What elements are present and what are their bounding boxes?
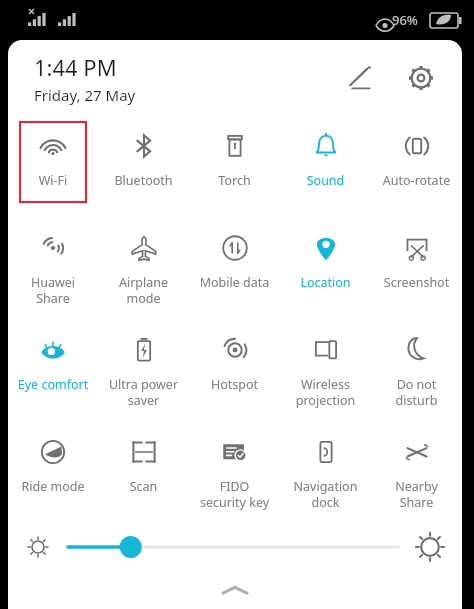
button[interactable]: Screenshot <box>371 218 462 320</box>
staticText: Airplane mode <box>99 274 188 306</box>
staticText: Navigation dock <box>281 478 370 510</box>
button[interactable]: Bluetooth <box>98 116 189 218</box>
button[interactable]: Brightness slider <box>68 524 398 570</box>
staticText: Screenshot <box>372 274 461 291</box>
button[interactable]: Ride mode <box>8 422 98 524</box>
button[interactable]: Airplane mode <box>98 218 189 320</box>
button[interactable]: Huawei Share <box>8 218 98 320</box>
button[interactable]: Eye comfort <box>8 320 98 422</box>
button[interactable]: Edit <box>336 55 382 101</box>
staticText: Ultra power saver <box>99 376 188 408</box>
staticText: 1:44 PM <box>34 52 117 82</box>
staticText: Nearby Share <box>372 478 461 510</box>
staticText: Scan <box>99 478 188 495</box>
button[interactable]: Low brightness <box>8 524 68 570</box>
button[interactable]: Navigation dock <box>280 422 371 524</box>
button[interactable]: Scan <box>98 422 189 524</box>
button[interactable]: Torch <box>189 116 280 218</box>
button[interactable]: High brightness <box>398 524 462 570</box>
staticText: Friday, 27 May <box>34 85 136 105</box>
staticText: Auto-rotate <box>372 172 461 189</box>
staticText: Wireless projection <box>281 376 370 408</box>
staticText: Sound <box>281 172 370 189</box>
staticText: Bluetooth <box>99 172 188 189</box>
staticText: Eye comfort <box>9 376 97 393</box>
button[interactable]: Ultra power saver <box>98 320 189 422</box>
staticText: Wi-Fi <box>9 172 97 189</box>
button[interactable]: Nearby Share <box>371 422 462 524</box>
staticText: Do not disturb <box>372 376 461 408</box>
button[interactable]: Mobile data <box>189 218 280 320</box>
staticText: FIDO security key <box>190 478 279 510</box>
button[interactable]: Wireless projection <box>280 320 371 422</box>
staticText: Hotspot <box>190 376 279 393</box>
staticText: Torch <box>190 172 279 189</box>
staticText: Huawei Share <box>9 274 97 306</box>
staticText: 96% <box>392 11 418 29</box>
button[interactable]: Sound <box>280 116 371 218</box>
button[interactable]: FIDO security key <box>189 422 280 524</box>
button[interactable]: Auto-rotate <box>371 116 462 218</box>
button[interactable]: Hotspot <box>189 320 280 422</box>
staticText: Mobile data <box>190 274 279 291</box>
button[interactable]: Location <box>280 218 371 320</box>
button[interactable]: Collapse <box>8 570 462 609</box>
staticText: Location <box>281 274 370 291</box>
button[interactable]: Settings <box>398 55 444 101</box>
staticText: Ride mode <box>9 478 97 495</box>
button[interactable]: Wi-Fi <box>8 116 98 218</box>
button[interactable]: Do not disturb <box>371 320 462 422</box>
